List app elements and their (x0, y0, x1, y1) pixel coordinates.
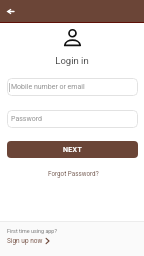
staticText: Mobile number or email (11, 83, 85, 91)
staticText: Sign up now (7, 237, 43, 245)
staticText: Password (11, 115, 42, 123)
button[interactable]: Password (7, 110, 138, 128)
button[interactable]: Back (2, 3, 18, 19)
staticText: Forgot Password? (48, 170, 99, 177)
staticText: First time using app? (7, 228, 57, 234)
staticText: Login in (55, 55, 89, 66)
button[interactable]: NEXT (7, 141, 138, 158)
button[interactable]: Mobile number or email (7, 78, 138, 96)
button[interactable]: Forgot Password? (44, 168, 103, 179)
staticText: NEXT (63, 146, 83, 154)
button[interactable]: Sign up now (7, 237, 50, 245)
